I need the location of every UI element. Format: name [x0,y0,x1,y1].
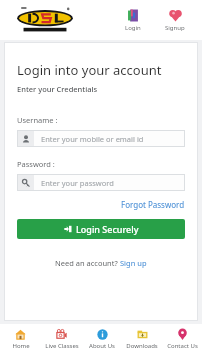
staticText: Login [125,24,141,32]
staticText: Signup [165,24,185,32]
staticText: Enter your mobile or email id [41,134,144,144]
staticText: Forgot Password [121,199,185,210]
staticText: Login Securely [76,223,139,235]
button[interactable]: DSL home logo [16,5,74,35]
button[interactable]: Signup [160,7,190,34]
button[interactable]: Login Securely [17,219,185,239]
staticText: Downloads [126,342,158,350]
button[interactable]: Login [118,7,148,34]
button[interactable]: Contact Us [162,324,202,355]
button[interactable]: Enter your mobile or email id [17,130,185,147]
button[interactable]: Live Classes [41,324,82,355]
staticText: Live Classes [45,342,79,350]
staticText: Username : [17,115,58,125]
button[interactable]: About Us [82,324,122,355]
button[interactable]: Enter your password [17,174,185,191]
staticText: About Us [89,342,115,350]
staticText: Home [12,342,30,350]
staticText: Contact Us [167,342,198,350]
button[interactable]: Forgot Password [121,198,185,211]
button[interactable]: Sign up [120,258,147,268]
staticText: Enter your password [41,178,114,188]
staticText: Enter your Credentials [17,84,98,94]
button[interactable]: Downloads [122,324,162,355]
staticText: Login into your account [17,61,162,79]
staticText: Need an account? [55,258,120,268]
staticText: Password : [17,159,55,169]
button[interactable]: Home [0,324,41,355]
staticText: Sign up [120,258,147,268]
